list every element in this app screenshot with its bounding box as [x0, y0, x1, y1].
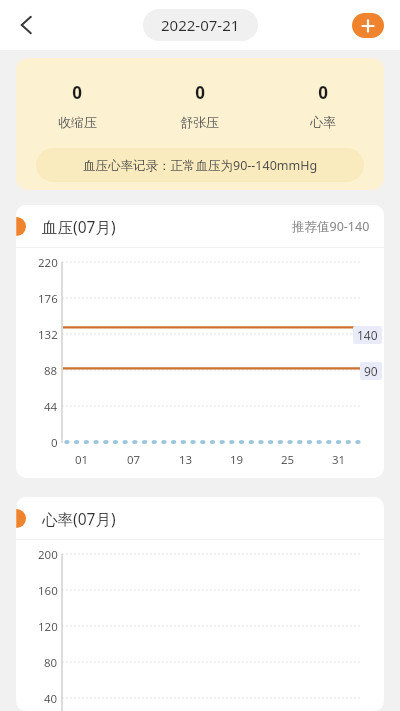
staticText: 血压(07月)	[42, 216, 116, 237]
staticText: 心率(07月)	[42, 508, 116, 529]
staticText: 120	[38, 619, 58, 635]
staticText: 2022-07-21	[161, 15, 240, 35]
staticText: 220	[38, 255, 58, 271]
staticText: 13	[179, 452, 193, 468]
staticText: 90	[364, 363, 378, 379]
staticText: 40	[44, 691, 58, 707]
staticText: 推荐值90-140	[292, 218, 370, 235]
staticText: 140	[357, 327, 378, 343]
staticText: 0	[51, 435, 58, 451]
staticText: 19	[230, 452, 244, 468]
button[interactable]: 2022-07-21	[143, 9, 258, 41]
button[interactable]: 血压(07月)	[16, 205, 384, 478]
staticText: 0	[72, 81, 82, 104]
staticText: 88	[44, 363, 58, 379]
staticText: 0	[195, 81, 205, 104]
staticText: 132	[38, 327, 58, 343]
staticText: 收缩压	[58, 114, 97, 130]
staticText: 心率	[310, 114, 336, 130]
staticText: 80	[44, 655, 58, 671]
staticText: 44	[44, 399, 58, 415]
staticText: 200	[38, 547, 58, 563]
staticText: 176	[38, 291, 58, 307]
staticText: 160	[38, 583, 58, 599]
staticText: 25	[281, 452, 295, 468]
staticText: 07	[127, 452, 141, 468]
staticText: 血压心率记录：正常血压为90--140mmHg	[83, 157, 318, 174]
button[interactable]: Add record	[352, 13, 384, 38]
staticText: 01	[75, 452, 89, 468]
button[interactable]: Back	[4, 2, 50, 48]
button[interactable]: 心率(07月)	[16, 497, 384, 711]
staticText: 0	[318, 81, 328, 104]
staticText: 舒张压	[180, 114, 219, 130]
staticText: 31	[332, 452, 346, 468]
